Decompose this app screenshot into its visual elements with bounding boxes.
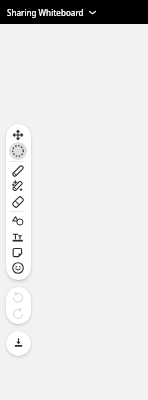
button[interactable]: Text bbox=[10, 230, 26, 246]
button[interactable]: Highlighter bbox=[10, 178, 26, 194]
button[interactable]: Pen bbox=[10, 163, 26, 179]
button[interactable]: Save image bbox=[6, 331, 31, 356]
button[interactable]: Note bbox=[10, 245, 26, 261]
button[interactable]: Undo bbox=[11, 290, 24, 303]
button[interactable]: Eraser bbox=[10, 194, 26, 210]
button[interactable]: Move bbox=[10, 127, 26, 143]
staticText: Sharing Whiteboard bbox=[7, 7, 84, 18]
button[interactable]: Reactions bbox=[10, 260, 26, 276]
button[interactable]: Redo bbox=[11, 306, 24, 319]
button[interactable]: Shapes bbox=[10, 214, 26, 230]
button[interactable]: Lasso select bbox=[10, 143, 26, 159]
